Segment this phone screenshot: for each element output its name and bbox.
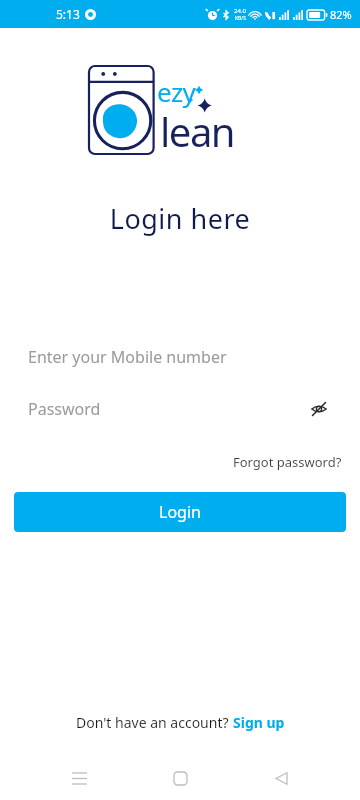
button[interactable]: Home [158,756,202,800]
button[interactable]: Enter your Mobile number [0,337,360,377]
staticText: Password [28,398,101,420]
button[interactable]: Recent apps [57,756,101,800]
staticText: KB/S [235,15,246,22]
staticText: ezy [157,74,196,109]
staticText: Login [159,501,201,523]
staticText: lean [160,104,235,158]
button[interactable]: Sign up [233,713,285,732]
button[interactable]: Back [259,756,303,800]
staticText: 24.0 [234,7,246,15]
staticText: Don't have an account? [76,713,233,732]
button[interactable]: Show password [306,396,332,422]
staticText: Sign up [233,713,285,732]
staticText: Login here [0,200,360,237]
button[interactable]: Forgot password? [229,449,346,475]
staticText: 82% [330,7,352,22]
staticText: 5:13 [56,6,80,22]
staticText: Enter your Mobile number [28,346,227,368]
staticText: Forgot password? [233,453,342,471]
button[interactable]: Login [14,492,346,532]
button[interactable]: Password [0,391,360,427]
